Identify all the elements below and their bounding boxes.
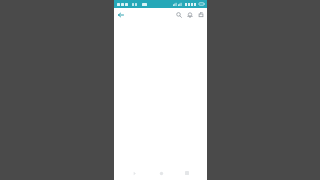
button[interactable]: Cart — [196, 9, 205, 21]
button[interactable]: Back — [116, 10, 126, 20]
button[interactable]: Home — [154, 166, 168, 180]
button[interactable]: Search — [174, 9, 183, 21]
button[interactable]: Recents — [180, 166, 194, 180]
button[interactable]: Notifications — [185, 9, 194, 21]
